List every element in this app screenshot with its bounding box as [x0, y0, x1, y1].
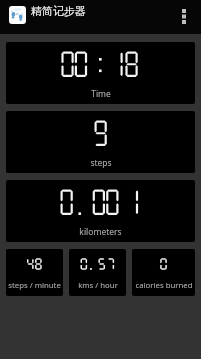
button[interactable]: calories burned [132, 249, 195, 296]
staticText: steps / minute [8, 280, 61, 291]
staticText: steps [90, 157, 112, 169]
button[interactable]: steps [6, 111, 195, 173]
staticText: kms / hour [78, 280, 118, 291]
staticText: calories burned [135, 280, 193, 291]
button[interactable]: More options [175, 0, 197, 34]
button[interactable]: kilometers [6, 180, 195, 242]
button[interactable]: kms / hour [69, 249, 126, 296]
staticText: 精简记步器 [31, 4, 86, 18]
button[interactable]: steps / minute [6, 249, 63, 296]
button[interactable]: Time [6, 42, 195, 104]
staticText: kilometers [79, 226, 122, 238]
staticText: Time [91, 88, 111, 100]
